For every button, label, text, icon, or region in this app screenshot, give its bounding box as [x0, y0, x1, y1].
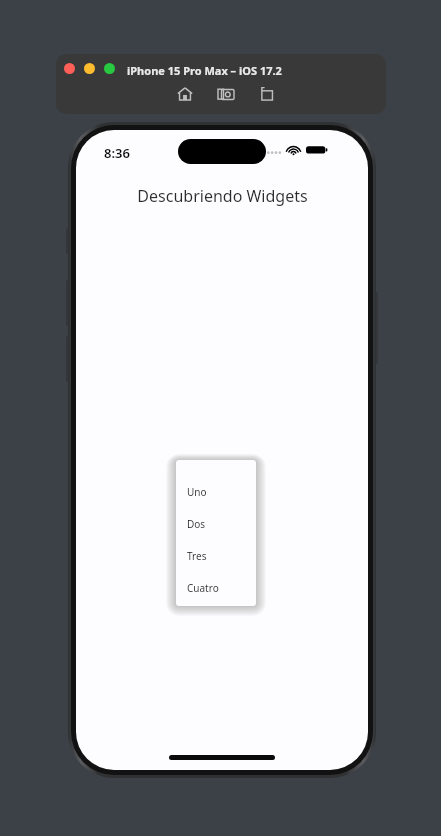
button[interactable]: Zoom: [104, 63, 115, 74]
button[interactable]: Uno: [176, 476, 256, 508]
staticText: Dos: [187, 517, 206, 531]
button[interactable]: Minimize: [84, 63, 95, 74]
button[interactable]: Cuatro: [176, 572, 256, 604]
staticText: Uno: [187, 485, 207, 499]
staticText: Tres: [187, 549, 207, 563]
staticText: 8:36: [104, 144, 130, 162]
staticText: Cuatro: [187, 581, 219, 595]
button[interactable]: Record: [257, 84, 277, 104]
staticText: Descubriendo Widgets: [137, 185, 308, 207]
button[interactable]: Screenshot: [216, 84, 236, 104]
button[interactable]: Close: [64, 63, 75, 74]
staticText: iPhone 15 Pro Max – iOS 17.2: [127, 63, 282, 78]
button[interactable]: Tres: [176, 540, 256, 572]
button[interactable]: Home: [175, 84, 195, 104]
button[interactable]: Dos: [176, 508, 256, 540]
